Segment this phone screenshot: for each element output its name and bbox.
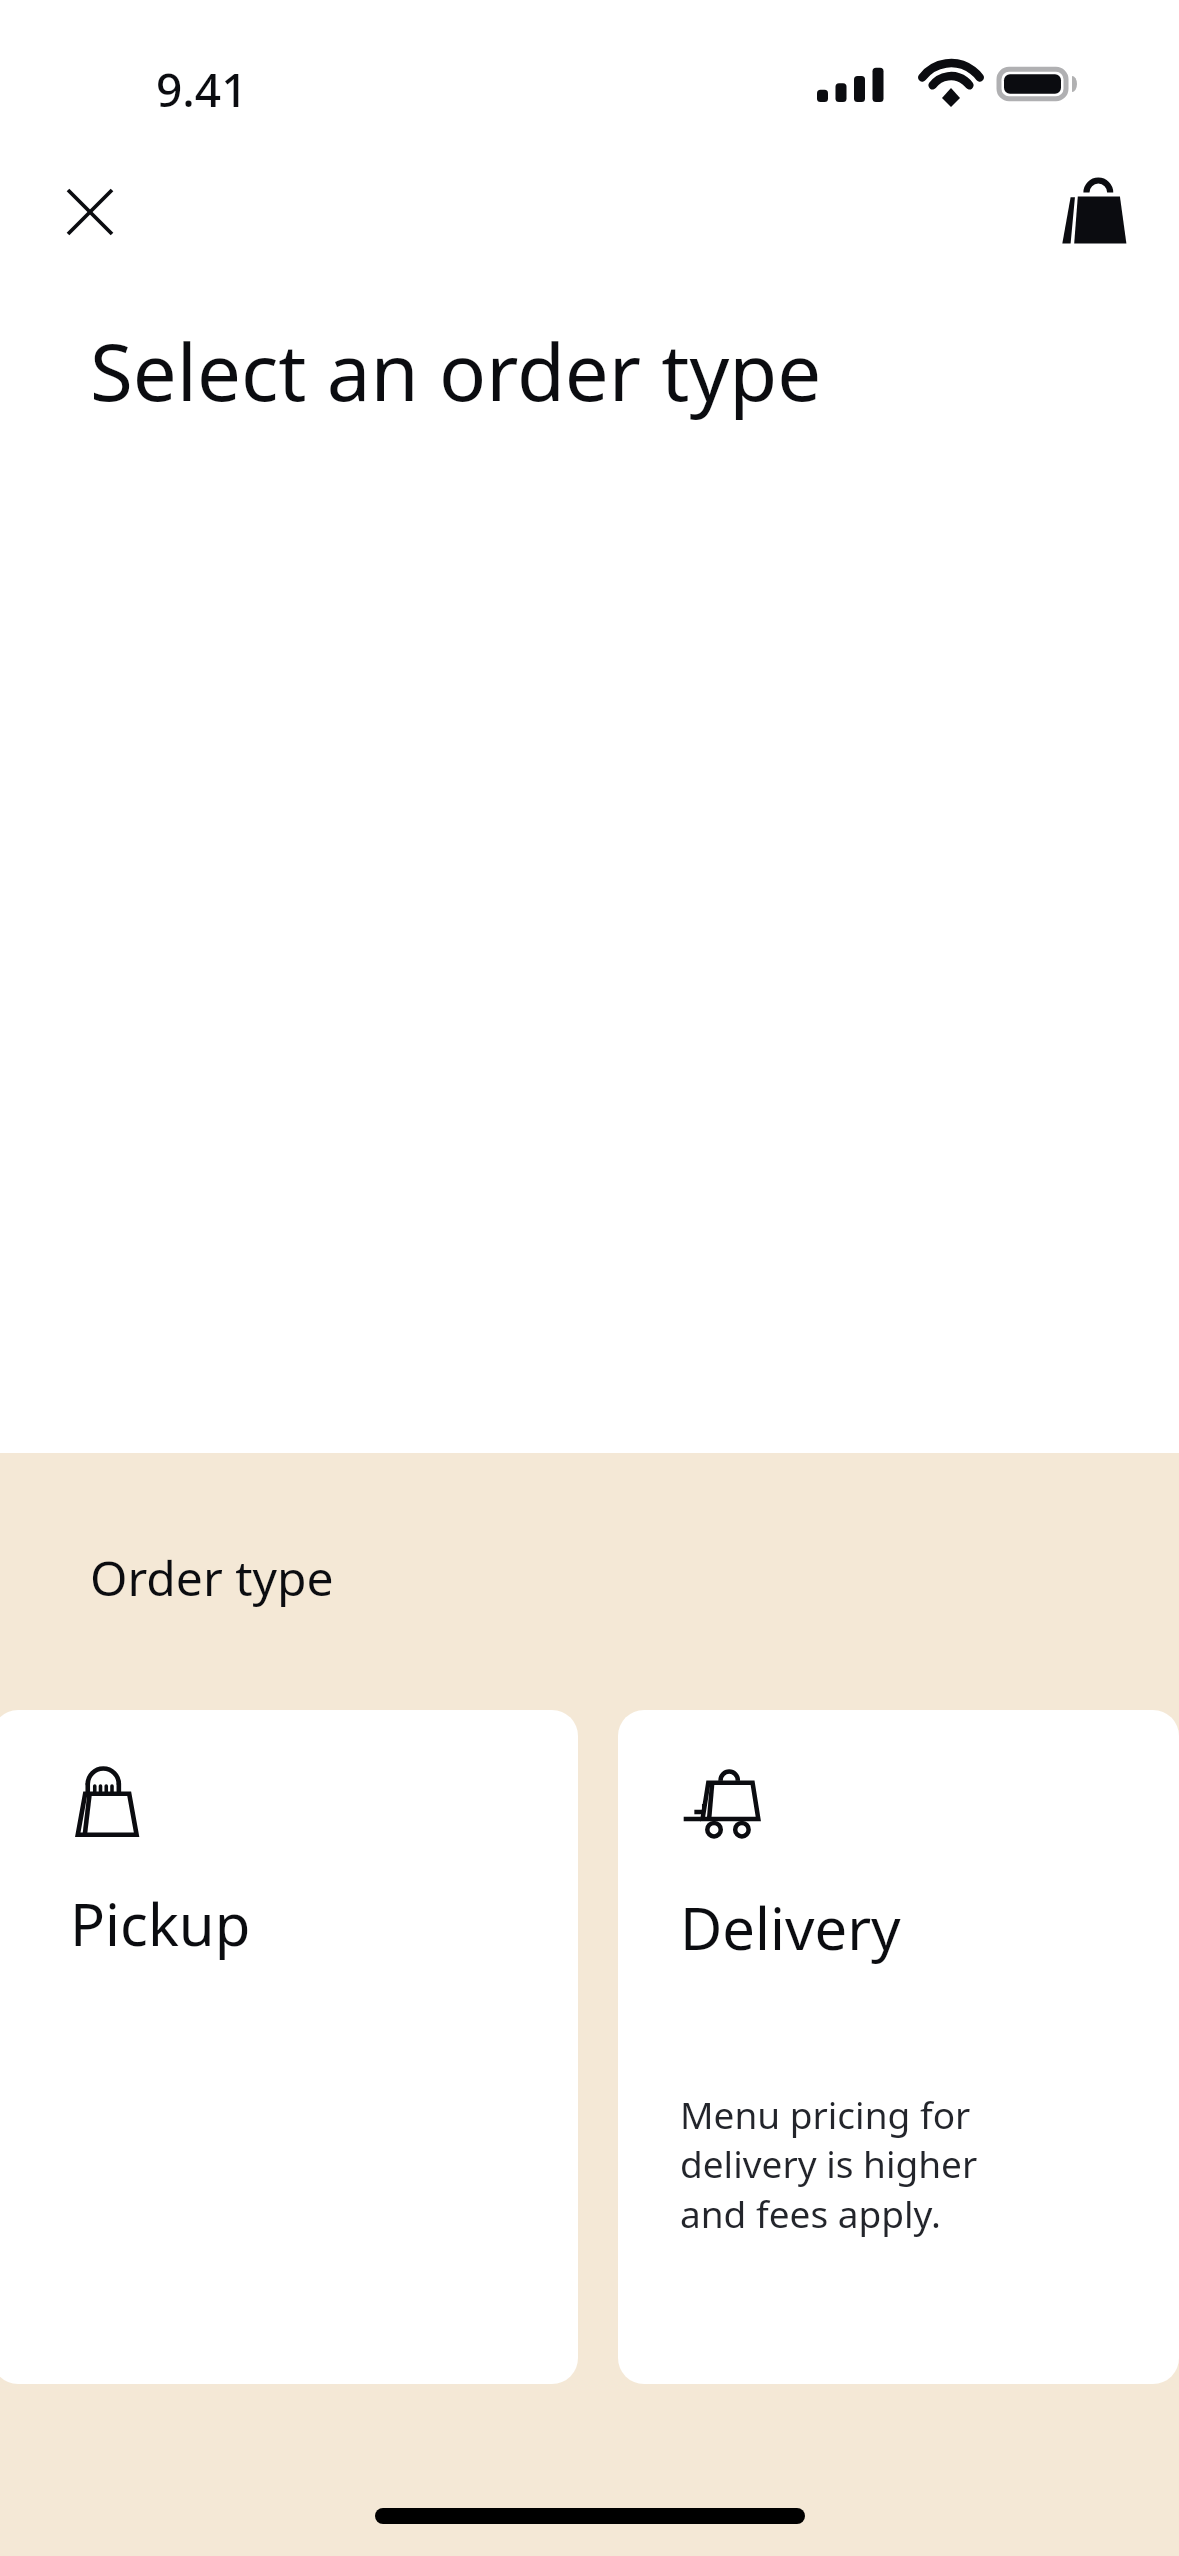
staticText: Order type (90, 1545, 334, 1610)
button[interactable]: Bag (1051, 168, 1137, 254)
staticText: 9.41 (156, 58, 248, 121)
button[interactable]: Pickup (0, 1710, 578, 2384)
staticText: Delivery (680, 1888, 901, 1967)
staticText: Select an order type (90, 318, 822, 424)
staticText: Pickup (70, 1884, 251, 1963)
button[interactable]: Close (52, 174, 128, 250)
button[interactable]: Delivery (618, 1710, 1179, 2384)
staticText: Menu pricing for delivery is higher and … (680, 2089, 978, 2239)
